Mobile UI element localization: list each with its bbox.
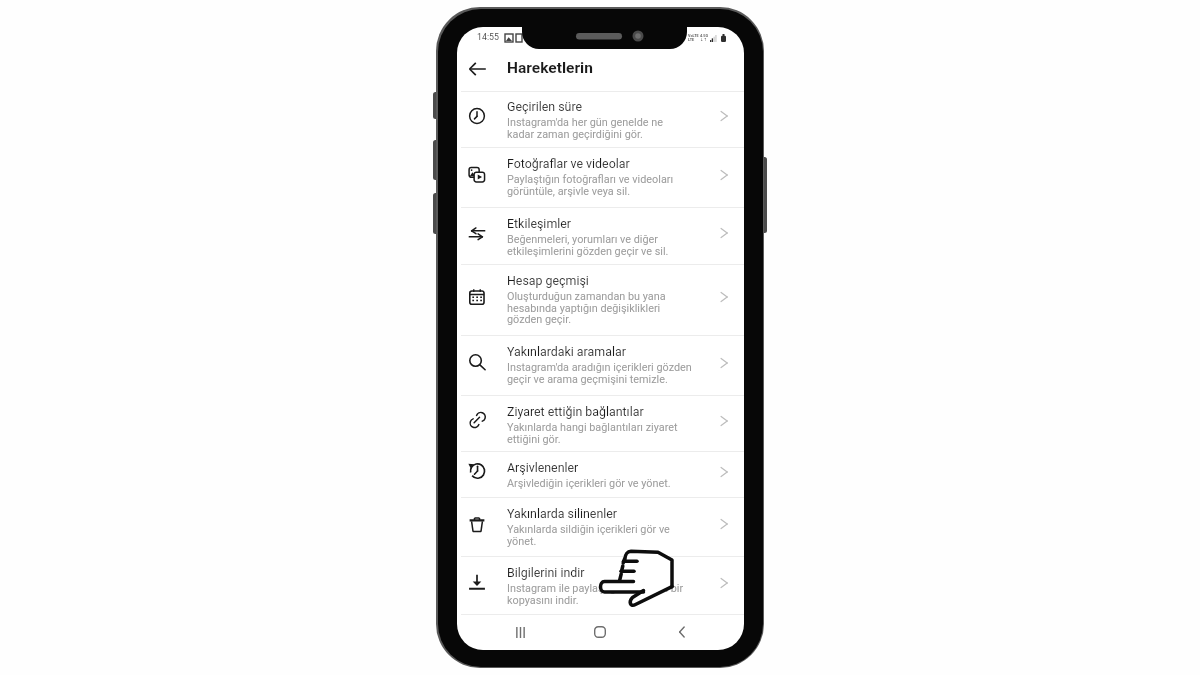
staticText: gözden geçir.	[507, 313, 572, 326]
button[interactable]: Home	[588, 620, 612, 644]
staticText: kopyasını indir.	[507, 594, 579, 607]
staticText: Paylaştığın fotoğrafları ve videoları	[507, 173, 674, 186]
staticText: ↓↑	[700, 37, 708, 42]
staticText: Instagram'da her gün genelde ne	[507, 116, 664, 129]
staticText: kadar zaman geçirdiğini gör.	[507, 128, 643, 141]
button[interactable]: Fotoğraflar ve videolar	[457, 148, 744, 208]
button[interactable]: Ziyaret ettiğin bağlantılar	[457, 396, 744, 452]
staticText: 4.5G	[700, 33, 709, 37]
staticText: Instagram'da aradığın içerikleri gözden	[507, 361, 692, 374]
staticText: Geçirilen süre	[507, 99, 583, 114]
button[interactable]: Etkileşimler	[457, 208, 744, 265]
staticText: Beğenmeleri, yorumları ve diğer	[507, 233, 658, 246]
staticText: Yakınlarda silinenler	[507, 506, 618, 521]
button[interactable]: Arşivlenenler	[457, 452, 744, 498]
staticText: Arşivlediğin içerikleri gör ve yönet.	[507, 477, 671, 490]
staticText: Yakınlarda hangi bağlantıları ziyaret	[507, 421, 678, 434]
staticText: hesabında yaptığın değişiklikleri	[507, 302, 661, 315]
staticText: 14:55	[477, 32, 499, 42]
staticText: ettiğini gör.	[507, 433, 561, 446]
button[interactable]: Back	[670, 620, 694, 644]
staticText: Hesap geçmişi	[507, 273, 589, 288]
staticText: yönet.	[507, 535, 537, 548]
button[interactable]: Recent apps	[508, 620, 532, 644]
staticText: Oluşturduğun zamandan bu yana	[507, 290, 666, 303]
button[interactable]: Back	[463, 54, 493, 84]
staticText: LTE	[688, 37, 695, 41]
staticText: etkileşimlerini gözden geçir ve sil.	[507, 245, 669, 258]
staticText: Instagram ile paylaştığın bilgilerin bir	[507, 582, 684, 595]
staticText: Arşivlenenler	[507, 460, 579, 475]
staticText: Ziyaret ettiğin bağlantılar	[507, 404, 644, 419]
button[interactable]: Yakınlarda silinenler	[457, 498, 744, 557]
staticText: Yakınlarda sildiğin içerikleri gör ve	[507, 523, 670, 536]
button[interactable]: Hesap geçmişi	[457, 265, 744, 336]
staticText: Etkileşimler	[507, 216, 572, 231]
staticText: Yakınlardaki aramalar	[507, 344, 626, 359]
button[interactable]: Bilgilerini indir	[457, 557, 744, 615]
staticText: Hareketlerin	[507, 59, 593, 77]
staticText: görüntüle, arşivle veya sil.	[507, 185, 631, 198]
staticText: Fotoğraflar ve videolar	[507, 156, 630, 171]
staticText: VoLTE	[688, 33, 699, 37]
button[interactable]: Yakınlardaki aramalar	[457, 336, 744, 396]
staticText: geçir ve arama geçmişini temizle.	[507, 373, 668, 386]
button[interactable]: Geçirilen süre	[457, 91, 744, 148]
staticText: Bilgilerini indir	[507, 565, 585, 580]
